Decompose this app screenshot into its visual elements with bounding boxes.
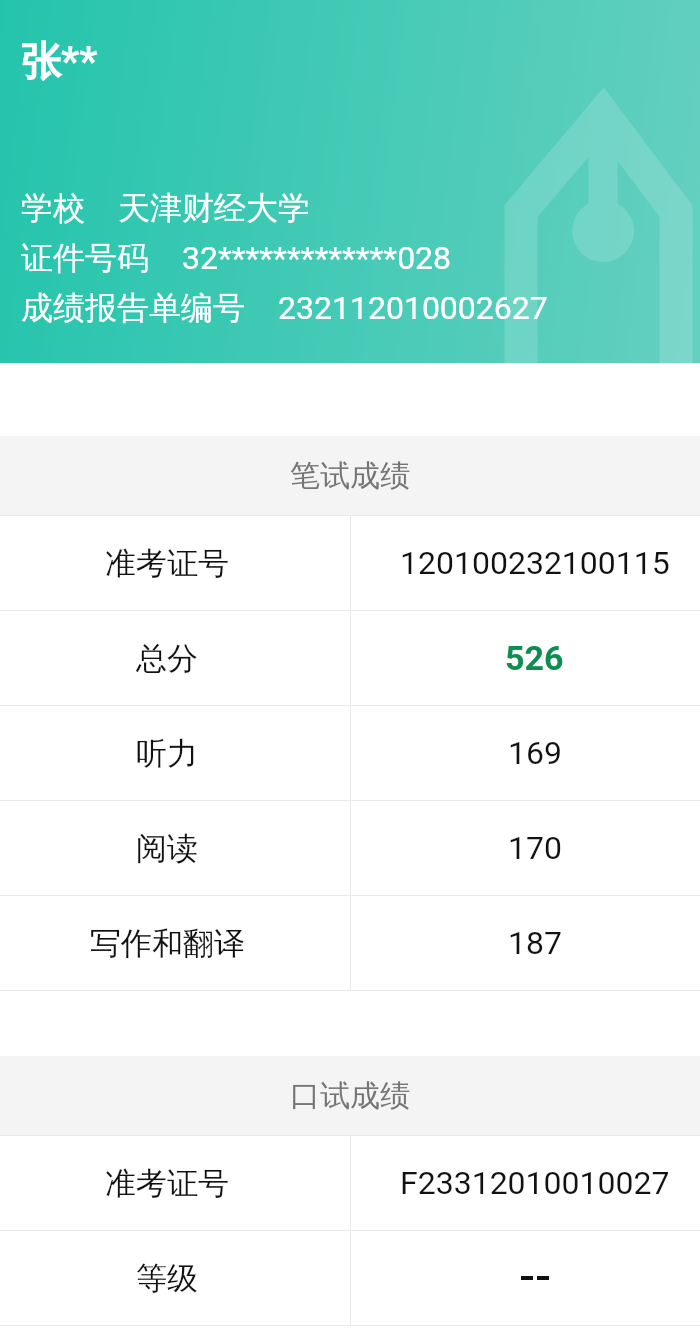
staticText: 成绩报告单编号 (21, 288, 245, 328)
button[interactable]: 听力 (0, 706, 700, 800)
staticText: 232112010002627 (278, 289, 548, 327)
staticText: 学校 (21, 188, 85, 228)
staticText: 等级 (136, 1259, 198, 1298)
staticText: 阅读 (136, 829, 198, 868)
staticText: 170 (508, 829, 562, 867)
staticText: 32*************028 (182, 239, 452, 277)
staticText: 总分 (136, 639, 198, 678)
button[interactable]: 准考证号 (0, 1136, 700, 1230)
staticText: 听力 (136, 734, 198, 773)
button[interactable]: 写作和翻译 (0, 896, 700, 990)
staticText: 准考证号 (105, 1164, 229, 1203)
staticText: 169 (508, 734, 562, 772)
button[interactable]: 总分 (0, 611, 700, 705)
staticText: 证件号码 (21, 238, 149, 278)
button[interactable]: 准考证号 (0, 516, 700, 610)
staticText: 526 (505, 638, 564, 678)
staticText: 写作和翻译 (90, 924, 245, 963)
staticText: 120100232100115 (400, 544, 670, 582)
staticText: 187 (508, 924, 562, 962)
staticText: 口试成绩 (290, 1077, 410, 1115)
staticText: 天津财经大学 (118, 188, 310, 228)
staticText: 笔试成绩 (290, 457, 410, 495)
staticText: 张** (21, 36, 98, 86)
button[interactable]: 等级 (0, 1231, 700, 1325)
staticText: 准考证号 (105, 544, 229, 583)
staticText: F23312010010027 (400, 1164, 670, 1202)
button[interactable]: 阅读 (0, 801, 700, 895)
